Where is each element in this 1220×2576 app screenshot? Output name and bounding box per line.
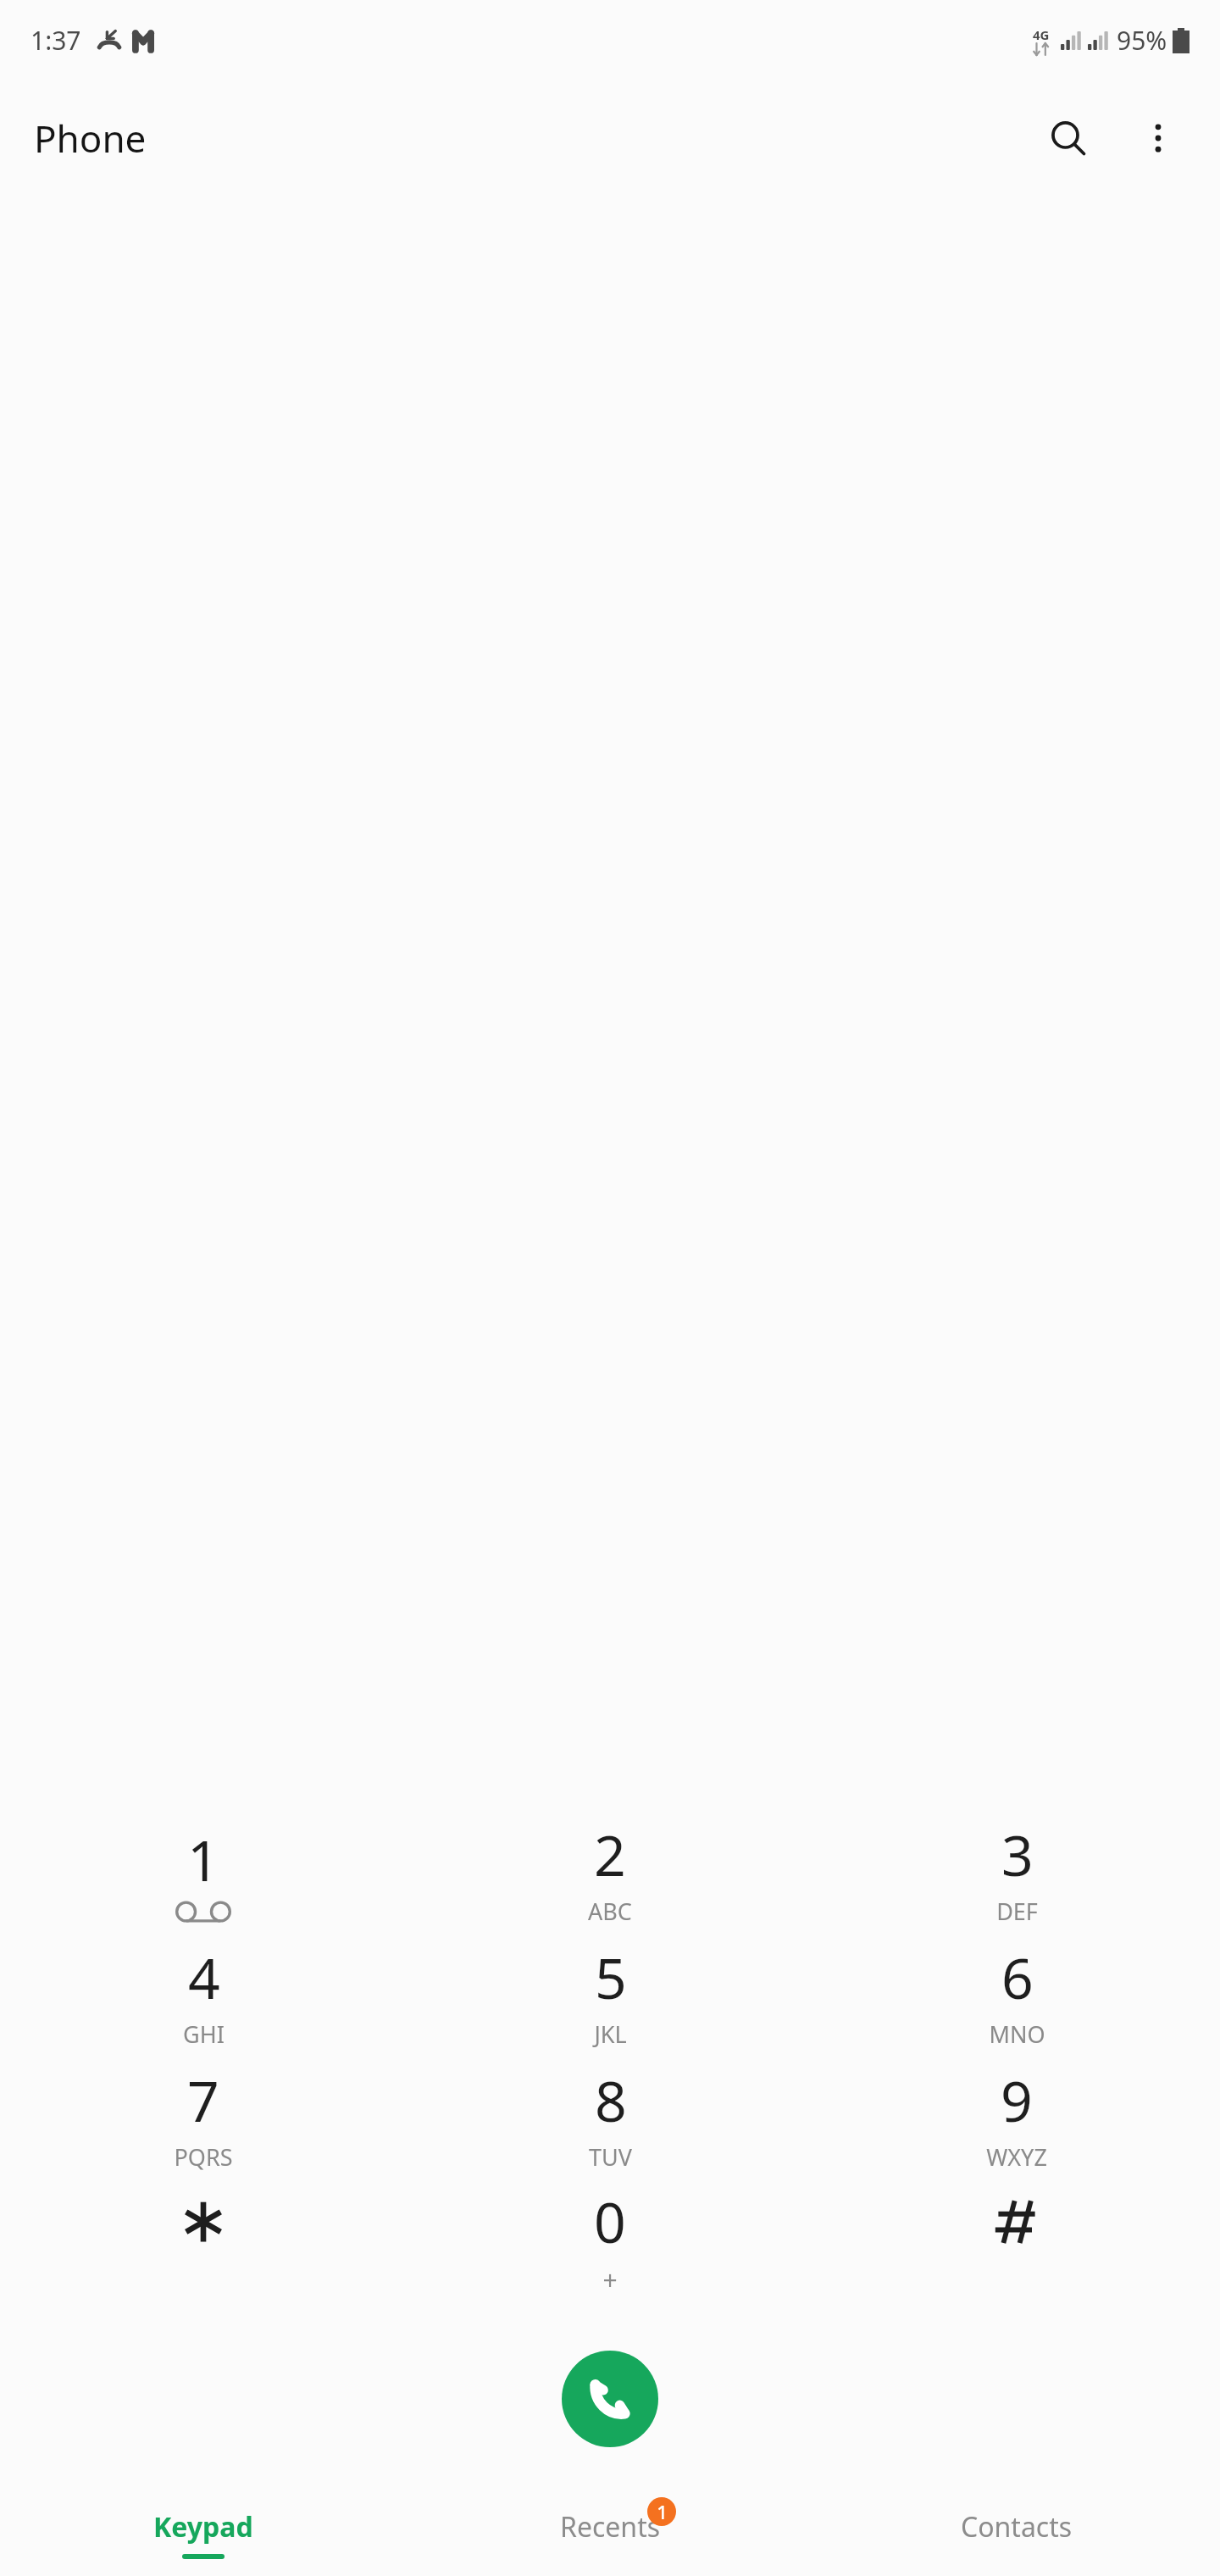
staticText: 3 bbox=[1001, 1816, 1034, 1892]
staticText: ABC bbox=[588, 1896, 632, 1927]
staticText: Phone bbox=[34, 113, 147, 164]
staticText: 95% bbox=[1117, 23, 1167, 58]
button[interactable]: More options bbox=[1122, 102, 1195, 175]
staticText: PQRS bbox=[174, 2141, 233, 2173]
staticText: 4G bbox=[1033, 26, 1050, 43]
staticText: 9 bbox=[1001, 2062, 1033, 2138]
button[interactable]: Keypad bbox=[0, 2508, 407, 2559]
staticText: DEF bbox=[996, 1896, 1038, 1927]
button[interactable]: 6 bbox=[813, 1933, 1220, 2056]
staticText: 8 bbox=[595, 2062, 627, 2138]
staticText: 1 bbox=[187, 1821, 219, 1897]
staticText: 4 bbox=[188, 1939, 220, 2015]
staticText: 1:37 bbox=[30, 23, 81, 58]
staticText: 6 bbox=[1001, 1939, 1034, 2015]
button[interactable]: Search bbox=[1032, 102, 1105, 175]
button[interactable] bbox=[813, 2179, 1220, 2301]
button[interactable]: 5 bbox=[407, 1933, 813, 2056]
button[interactable]: 3 bbox=[813, 1810, 1220, 1933]
button[interactable]: 0 bbox=[407, 2179, 813, 2301]
staticText: 0 bbox=[594, 2183, 626, 2259]
button[interactable]: Recents bbox=[407, 2508, 813, 2559]
button[interactable]: 8 bbox=[407, 2056, 813, 2179]
button[interactable]: 2 bbox=[407, 1810, 813, 1933]
button[interactable]: Call bbox=[562, 2351, 658, 2447]
staticText: TUV bbox=[589, 2141, 632, 2173]
staticText: GHI bbox=[183, 2018, 225, 2050]
button[interactable] bbox=[0, 2179, 407, 2301]
staticText: 7 bbox=[187, 2062, 219, 2138]
button[interactable]: 1 bbox=[0, 1810, 407, 1933]
staticText: Recents bbox=[560, 2508, 661, 2545]
staticText: 2 bbox=[594, 1816, 626, 1892]
staticText: WXYZ bbox=[986, 2141, 1047, 2173]
button[interactable]: 4 bbox=[0, 1933, 407, 2056]
staticText: Contacts bbox=[961, 2508, 1073, 2545]
staticText: 5 bbox=[595, 1939, 627, 2015]
staticText: MNO bbox=[989, 2018, 1045, 2050]
button[interactable]: Contacts bbox=[813, 2508, 1220, 2559]
button[interactable]: 9 bbox=[813, 2056, 1220, 2179]
staticText: Keypad bbox=[153, 2508, 253, 2545]
staticText: + bbox=[602, 2262, 618, 2297]
staticText: JKL bbox=[594, 2018, 627, 2050]
button[interactable]: 7 bbox=[0, 2056, 407, 2179]
staticText: 1 bbox=[657, 2499, 668, 2524]
